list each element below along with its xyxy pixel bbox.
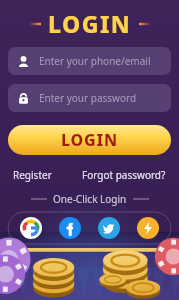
button[interactable]: Enter your password <box>8 84 171 112</box>
button[interactable]: Enter your phone/email <box>8 47 171 75</box>
staticText: One-Click Login <box>53 192 127 206</box>
button[interactable]: LOGIN <box>8 125 171 155</box>
button[interactable]: Sign in with Twitter <box>98 217 120 239</box>
staticText: LOGIN <box>48 8 132 39</box>
staticText: Enter your phone/email <box>39 54 151 68</box>
button[interactable]: Quick sign in <box>137 217 159 239</box>
staticText: Forgot password? <box>82 168 166 182</box>
button[interactable]: Forgot password? <box>80 166 168 184</box>
staticText: Register <box>13 168 52 182</box>
staticText: LOGIN <box>61 129 118 151</box>
button[interactable]: Sign in with Facebook <box>59 217 81 239</box>
button[interactable]: Sign in with Google <box>20 217 42 239</box>
button[interactable]: Register <box>11 166 54 184</box>
staticText: Enter your password <box>39 91 137 105</box>
